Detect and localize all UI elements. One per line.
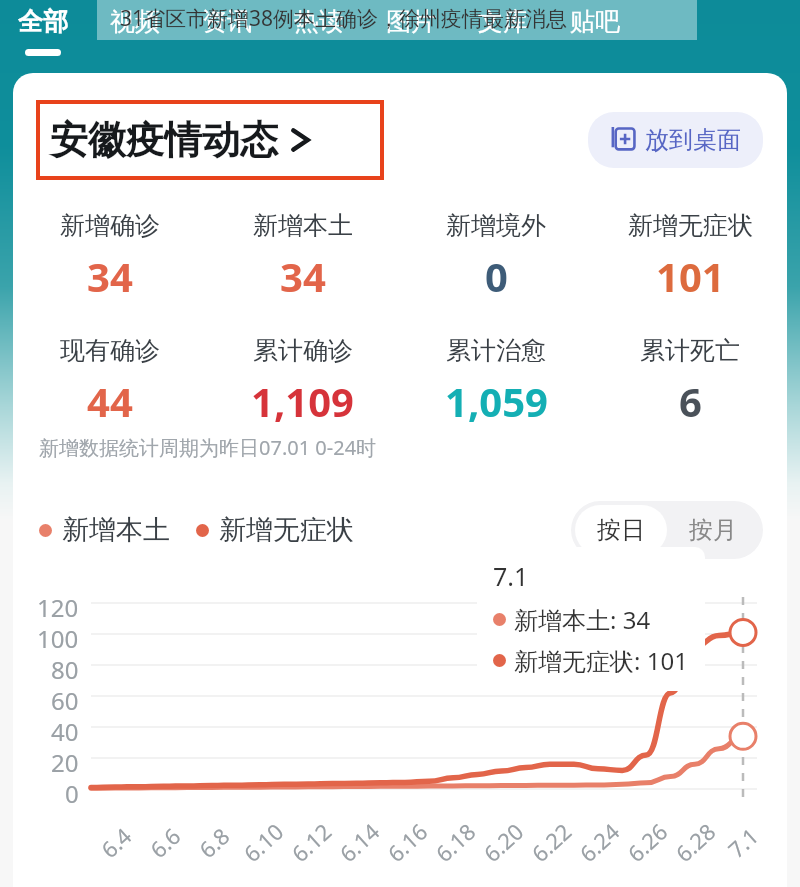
button[interactable]: 全部 bbox=[18, 0, 68, 56]
staticText: 6 bbox=[679, 374, 702, 428]
staticText: 热读 bbox=[294, 6, 344, 37]
button[interactable]: 视频 bbox=[110, 0, 160, 37]
staticText: 120 bbox=[37, 591, 79, 622]
staticText: 图片 bbox=[386, 6, 436, 37]
staticText: 新增无症状: 101 bbox=[514, 644, 688, 677]
staticText: 6.16 bbox=[381, 816, 433, 868]
staticText: 视频 bbox=[110, 6, 160, 37]
staticText: 新增本土: 34 bbox=[514, 603, 651, 636]
staticText: 101 bbox=[656, 249, 725, 303]
staticText: 6.20 bbox=[477, 816, 529, 868]
staticText: 新增本土 bbox=[62, 513, 170, 547]
staticText: 6.28 bbox=[669, 816, 721, 868]
button[interactable]: 按月 bbox=[667, 505, 759, 555]
button[interactable]: 新增境外 bbox=[399, 210, 593, 303]
staticText: 1,059 bbox=[445, 374, 548, 428]
staticText: 80 bbox=[51, 653, 79, 684]
button[interactable]: 新增确诊 bbox=[13, 210, 206, 303]
staticText: 31省区市新增38例本土确诊，徐州疫情最新消息 bbox=[120, 4, 568, 33]
staticText: 6.18 bbox=[429, 816, 481, 868]
staticText: 6.6 bbox=[143, 820, 187, 864]
button[interactable]: 贴吧 bbox=[570, 0, 620, 37]
staticText: 44 bbox=[87, 374, 133, 428]
staticText: 现有确诊 bbox=[60, 335, 160, 366]
staticText: 34 bbox=[280, 249, 326, 303]
staticText: 新增确诊 bbox=[60, 210, 160, 241]
staticText: 6.26 bbox=[621, 816, 673, 868]
button[interactable]: 安徽疫情动态 bbox=[40, 104, 380, 176]
staticText: 6.12 bbox=[285, 816, 337, 868]
button[interactable]: 累计确诊 bbox=[206, 335, 399, 428]
staticText: 7.1 bbox=[493, 559, 529, 593]
staticText: 1,109 bbox=[251, 374, 354, 428]
staticText: 放到桌面 bbox=[645, 125, 741, 155]
staticText: 新增无症状 bbox=[628, 210, 753, 241]
button[interactable]: 累计治愈 bbox=[399, 335, 593, 428]
button[interactable]: 新增无症状 bbox=[593, 210, 787, 303]
staticText: 新增数据统计周期为昨日07.01 0-24时 bbox=[39, 434, 377, 461]
staticText: 新增本土 bbox=[253, 210, 353, 241]
staticText: 60 bbox=[51, 684, 79, 715]
staticText: 累计死亡 bbox=[640, 335, 740, 366]
staticText: 6.22 bbox=[525, 816, 577, 868]
staticText: 累计确诊 bbox=[253, 335, 353, 366]
staticText: 累计治愈 bbox=[446, 335, 546, 366]
button[interactable]: 现有确诊 bbox=[13, 335, 206, 428]
button[interactable]: 资讯 bbox=[202, 0, 252, 37]
button[interactable]: 累计死亡 bbox=[593, 335, 787, 428]
staticText: 文库 bbox=[478, 6, 528, 37]
staticText: 按日 bbox=[597, 515, 645, 545]
staticText: 6.24 bbox=[573, 816, 625, 868]
staticText: 6.10 bbox=[237, 816, 289, 868]
button[interactable]: 按日 bbox=[575, 505, 667, 555]
button[interactable]: 放到桌面 bbox=[588, 112, 763, 168]
staticText: 新增境外 bbox=[446, 210, 546, 241]
staticText: 40 bbox=[51, 715, 79, 746]
staticText: 安徽疫情动态 bbox=[50, 116, 278, 164]
staticText: 20 bbox=[51, 746, 79, 777]
staticText: 100 bbox=[37, 622, 79, 653]
staticText: 6.8 bbox=[192, 820, 236, 864]
button[interactable]: 新增本土 bbox=[206, 210, 399, 303]
button[interactable]: 图片 bbox=[386, 0, 436, 37]
staticText: 新增无症状 bbox=[219, 513, 354, 547]
staticText: 资讯 bbox=[202, 6, 252, 37]
staticText: 全部 bbox=[18, 6, 68, 37]
staticText: 0 bbox=[485, 249, 508, 303]
staticText: 6.4 bbox=[94, 820, 138, 864]
button[interactable]: 文库 bbox=[478, 0, 528, 37]
staticText: 按月 bbox=[689, 515, 737, 545]
button[interactable]: 热读 bbox=[294, 0, 344, 37]
staticText: 0 bbox=[65, 777, 79, 808]
staticText: 贴吧 bbox=[570, 6, 620, 37]
staticText: 6.14 bbox=[333, 816, 385, 868]
staticText: 7.1 bbox=[721, 820, 765, 864]
staticText: 34 bbox=[87, 249, 133, 303]
